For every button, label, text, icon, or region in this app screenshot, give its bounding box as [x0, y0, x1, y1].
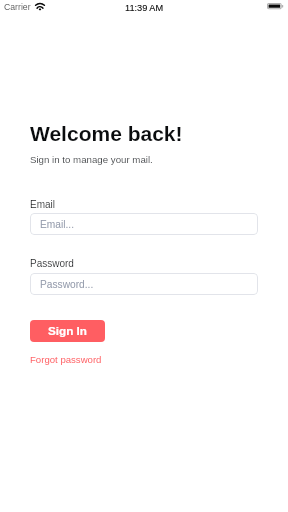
button[interactable]: Sign In	[30, 320, 105, 342]
staticText: Sign in to manage your mail.	[30, 154, 153, 165]
staticText: Carrier	[4, 3, 31, 12]
staticText: Sign In	[48, 325, 87, 337]
staticText: Email...	[40, 219, 74, 230]
staticText: Email	[30, 199, 56, 210]
staticText: Forgot password	[30, 354, 102, 365]
button[interactable]: Password...	[30, 273, 258, 295]
staticText: 11:39 AM	[125, 3, 164, 13]
staticText: 11:39 AM	[125, 3, 164, 13]
staticText: Password	[30, 258, 74, 269]
staticText: Welcome back!	[30, 122, 183, 145]
staticText: Password...	[40, 279, 94, 290]
button[interactable]: Email...	[30, 213, 258, 235]
other: Battery full	[267, 3, 284, 10]
button[interactable]: Forgot password	[30, 354, 102, 365]
other: Wi-Fi	[33, 2, 47, 11]
